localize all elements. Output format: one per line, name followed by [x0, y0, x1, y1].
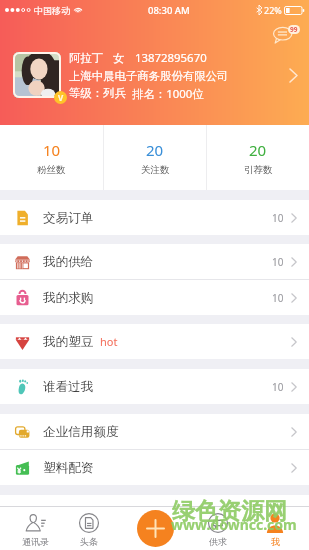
staticText: 谁看过我: [43, 379, 94, 395]
staticText: 08:30 AM: [148, 4, 190, 17]
staticText: 上海中晨电子商务股份有限公司: [69, 69, 229, 83]
button[interactable]: Messages: [273, 25, 300, 44]
button[interactable]: 我的求购: [0, 280, 309, 315]
button[interactable]: 我的塑豆: [0, 324, 309, 359]
staticText: 阿拉丁: [69, 51, 104, 65]
staticText: 头条: [80, 536, 98, 547]
button[interactable]: 10: [0, 125, 103, 190]
button[interactable]: Add: [137, 510, 174, 547]
button[interactable]: 供求: [191, 506, 245, 550]
staticText: www.downcc.com: [171, 515, 297, 534]
staticText: 10: [272, 211, 284, 225]
staticText: 10: [272, 380, 284, 394]
button[interactable]: 20: [207, 125, 309, 190]
staticText: 供求: [209, 536, 227, 547]
staticText: 10: [272, 255, 284, 269]
staticText: 塑料配资: [43, 460, 94, 476]
staticText: 等级：列兵: [69, 86, 126, 100]
staticText: 粉丝数: [37, 164, 66, 176]
button[interactable]: 头条: [62, 506, 116, 550]
staticText: 10: [43, 140, 61, 160]
staticText: 企业信用额度: [43, 424, 119, 440]
staticText: 我的关注: [43, 505, 94, 521]
button[interactable]: 20: [104, 125, 206, 190]
button[interactable]: 我的关注: [0, 495, 309, 530]
staticText: 中国移动: [34, 5, 70, 16]
staticText: 排名：1000位: [132, 86, 204, 102]
button[interactable]: 交易订单: [0, 200, 309, 235]
staticText: 13872895670: [135, 50, 207, 66]
staticText: 交易订单: [43, 210, 94, 226]
staticText: 22%: [264, 4, 282, 16]
staticText: 关注数: [141, 164, 170, 176]
button[interactable]: 通讯录: [8, 506, 62, 550]
button[interactable]: 我: [248, 506, 302, 550]
button[interactable]: 企业信用额度: [0, 414, 309, 449]
button[interactable]: 塑料配资: [0, 450, 309, 485]
button[interactable]: 谁看过我: [0, 369, 309, 404]
staticText: 我的塑豆: [43, 334, 94, 350]
button[interactable]: 我的供给: [0, 244, 309, 279]
staticText: 20: [249, 140, 267, 160]
staticText: 引荐数: [244, 164, 273, 176]
staticText: 通讯录: [22, 536, 49, 547]
staticText: hot: [100, 334, 118, 349]
staticText: 20: [146, 140, 164, 160]
staticText: 我: [271, 536, 280, 547]
staticText: 10: [272, 291, 284, 305]
staticText: V: [58, 92, 64, 103]
staticText: 绿色资源网: [172, 497, 287, 526]
staticText: 我的求购: [43, 290, 94, 306]
staticText: 99: [290, 25, 298, 34]
staticText: 我的供给: [43, 254, 94, 270]
staticText: 女: [113, 51, 125, 65]
